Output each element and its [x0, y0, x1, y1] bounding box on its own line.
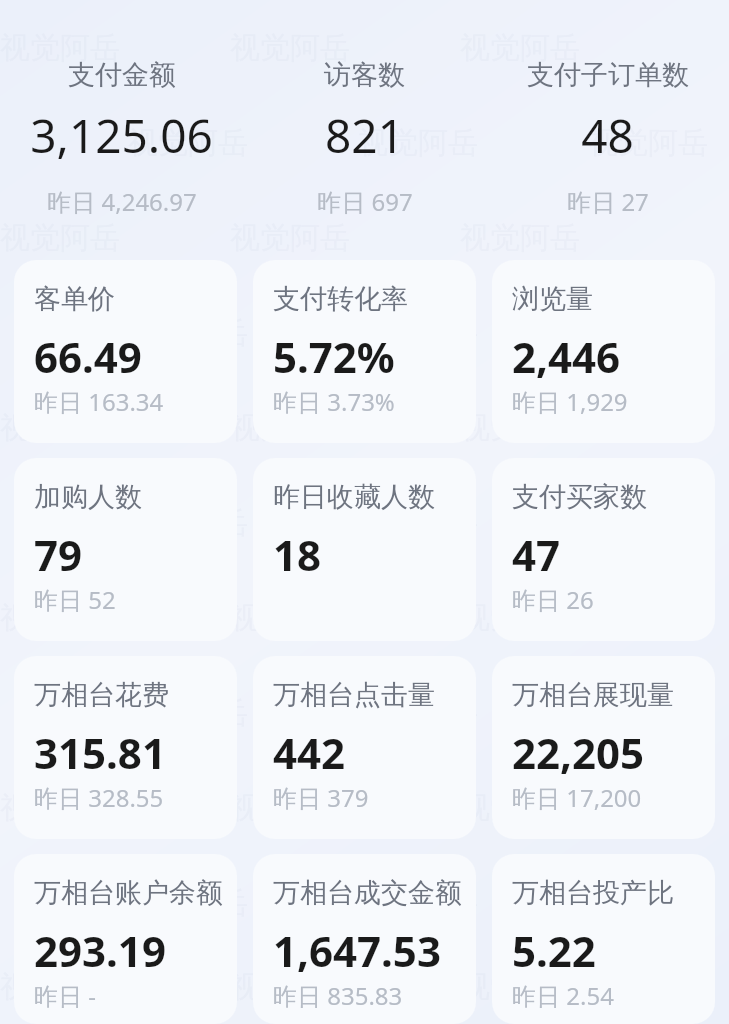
staticText: 视觉阿岳 — [0, 789, 120, 827]
staticText: 视觉阿岳 — [358, 124, 478, 162]
staticText: 视觉阿岳 — [0, 599, 120, 637]
button[interactable]: 万相台点击量 — [253, 656, 476, 839]
staticText: 支付金额 — [68, 58, 176, 92]
staticText: 视觉阿岳 — [358, 884, 478, 922]
button[interactable]: 支付转化率 — [253, 260, 476, 443]
staticText: 442 — [273, 724, 346, 781]
staticText: 视觉阿岳 — [588, 504, 708, 542]
staticText: 视觉阿岳 — [358, 694, 478, 732]
staticText: 821 — [325, 104, 404, 167]
staticText: 视觉阿岳 — [230, 599, 350, 637]
staticText: 昨日 4,246.97 — [47, 185, 197, 218]
staticText: 47 — [512, 526, 561, 583]
staticText: 昨日 697 — [317, 185, 413, 218]
staticText: 视觉阿岳 — [230, 409, 350, 447]
button[interactable]: 万相台成交金额 — [253, 854, 476, 1024]
staticText: 昨日 379 — [273, 781, 369, 814]
staticText: 万相台投产比 — [512, 876, 674, 910]
button[interactable]: 客单价 — [14, 260, 237, 443]
staticText: 视觉阿岳 — [460, 409, 580, 447]
staticText: 视觉阿岳 — [588, 694, 708, 732]
staticText: 视觉阿岳 — [128, 884, 248, 922]
staticText: 视觉阿岳 — [128, 504, 248, 542]
staticText: 加购人数 — [34, 480, 142, 514]
staticText: 支付子订单数 — [527, 58, 689, 92]
staticText: 48 — [581, 104, 634, 167]
staticText: 18 — [273, 526, 322, 583]
staticText: 昨日 52 — [34, 583, 116, 616]
staticText: 昨日收藏人数 — [273, 480, 435, 514]
staticText: 视觉阿岳 — [460, 789, 580, 827]
staticText: 22,205 — [512, 724, 645, 781]
staticText: 视觉阿岳 — [230, 789, 350, 827]
staticText: 昨日 17,200 — [512, 781, 642, 814]
button[interactable]: 支付买家数 — [492, 458, 715, 641]
staticText: 视觉阿岳 — [230, 29, 350, 67]
button[interactable]: 万相台花费 — [14, 656, 237, 839]
staticText: 支付买家数 — [512, 480, 647, 514]
staticText: 视觉阿岳 — [588, 884, 708, 922]
staticText: 访客数 — [324, 58, 405, 92]
staticText: 66.49 — [34, 328, 142, 385]
button[interactable]: 万相台投产比 — [492, 854, 715, 1024]
staticText: 视觉阿岳 — [358, 314, 478, 352]
staticText: 昨日 27 — [567, 185, 649, 218]
staticText: 视觉阿岳 — [0, 29, 120, 67]
staticText: 万相台成交金额 — [273, 876, 462, 910]
staticText: 视觉阿岳 — [128, 694, 248, 732]
button[interactable]: 昨日收藏人数 — [253, 458, 476, 641]
staticText: 视觉阿岳 — [460, 599, 580, 637]
staticText: 1,647.53 — [273, 922, 441, 979]
staticText: 昨日 328.55 — [34, 781, 164, 814]
staticText: 视觉阿岳 — [588, 124, 708, 162]
button[interactable]: 访客数 — [243, 58, 486, 218]
staticText: 3,125.06 — [30, 104, 213, 167]
staticText: 昨日 1,929 — [512, 385, 628, 418]
staticText: 昨日 2.54 — [512, 979, 614, 1008]
button[interactable]: 万相台展现量 — [492, 656, 715, 839]
staticText: 视觉阿岳 — [128, 124, 248, 162]
staticText: 昨日 835.83 — [273, 979, 403, 1008]
staticText: 视觉阿岳 — [128, 314, 248, 352]
staticText: 视觉阿岳 — [460, 968, 580, 1006]
staticText: 视觉阿岳 — [588, 314, 708, 352]
staticText: 视觉阿岳 — [358, 504, 478, 542]
staticText: 昨日 26 — [512, 583, 594, 616]
staticText: 293.19 — [34, 922, 166, 979]
staticText: 5.22 — [512, 922, 596, 979]
button[interactable]: 浏览量 — [492, 260, 715, 443]
staticText: 79 — [34, 526, 83, 583]
staticText: 视觉阿岳 — [460, 29, 580, 67]
staticText: 视觉阿岳 — [0, 968, 120, 1006]
staticText: 昨日 163.34 — [34, 385, 164, 418]
staticText: 万相台点击量 — [273, 678, 435, 712]
button[interactable]: 支付子订单数 — [486, 58, 729, 218]
button[interactable]: 加购人数 — [14, 458, 237, 641]
staticText: 万相台账户余额 — [34, 876, 223, 910]
staticText: 315.81 — [34, 724, 166, 781]
staticText: 支付转化率 — [273, 282, 408, 316]
staticText: 昨日 - — [34, 979, 96, 1008]
staticText: 5.72% — [273, 328, 395, 385]
staticText: 视觉阿岳 — [0, 409, 120, 447]
staticText: 万相台展现量 — [512, 678, 674, 712]
staticText: 万相台花费 — [34, 678, 169, 712]
staticText: 浏览量 — [512, 282, 593, 316]
staticText: 客单价 — [34, 282, 115, 316]
button[interactable]: 支付金额 — [0, 58, 243, 218]
staticText: 2,446 — [512, 328, 621, 385]
staticText: 视觉阿岳 — [230, 968, 350, 1006]
staticText: 昨日 3.73% — [273, 385, 395, 418]
button[interactable]: 万相台账户余额 — [14, 854, 237, 1024]
